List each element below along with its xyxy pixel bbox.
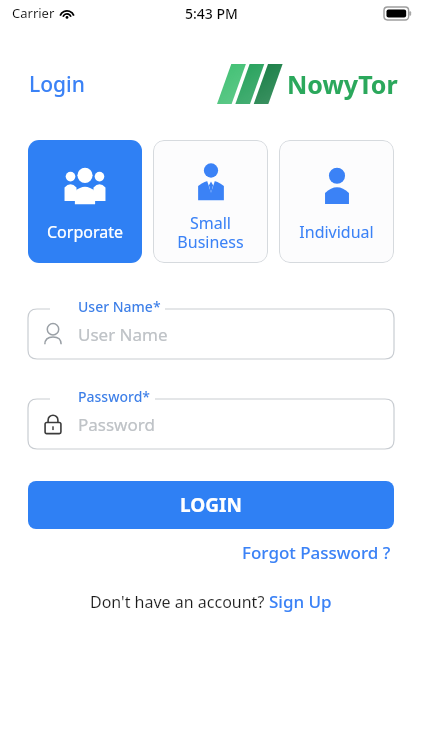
button[interactable]: Forgot Password ? bbox=[240, 539, 393, 566]
button[interactable]: Login bbox=[26, 68, 88, 101]
button[interactable]: Small Business bbox=[153, 140, 268, 263]
staticText: Login bbox=[29, 70, 85, 99]
staticText: User Name* bbox=[78, 297, 161, 316]
button[interactable]: LOGIN bbox=[28, 481, 394, 529]
button[interactable]: Corporate bbox=[28, 140, 142, 263]
staticText: Sign Up bbox=[269, 590, 332, 613]
staticText: Carrier bbox=[12, 4, 55, 22]
staticText: LOGIN bbox=[180, 492, 242, 518]
button[interactable]: Sign Up bbox=[269, 590, 332, 613]
staticText: Forgot Password ? bbox=[242, 541, 391, 564]
staticText: Password* bbox=[78, 387, 151, 406]
button[interactable]: Individual bbox=[279, 140, 394, 263]
staticText: Individual bbox=[299, 221, 374, 243]
staticText: 5:43 PM bbox=[185, 4, 238, 23]
staticText: NowyTor bbox=[287, 67, 398, 101]
staticText: Corporate bbox=[47, 221, 123, 243]
staticText: Password bbox=[78, 413, 155, 436]
staticText: User Name bbox=[78, 323, 168, 346]
staticText: Small Business bbox=[177, 212, 244, 253]
staticText: Don't have an account? bbox=[90, 591, 269, 613]
